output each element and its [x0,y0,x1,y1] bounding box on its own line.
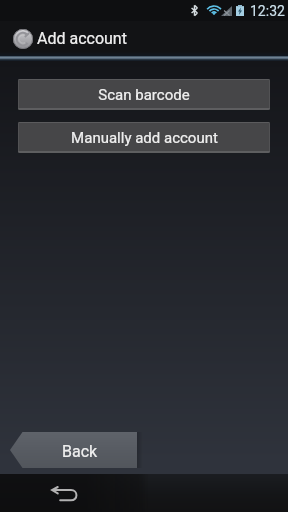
staticText: Manually add account [71,129,218,147]
button[interactable]: Back [46,475,82,511]
staticText: Add account [37,29,127,48]
button[interactable]: Manually add account [18,122,270,153]
button[interactable]: Add account [0,21,140,56]
staticText: Back [62,442,98,461]
button[interactable]: Back [10,432,137,468]
button[interactable]: Scan barcode [18,79,270,110]
staticText: 12:32 [250,3,285,19]
staticText: Scan barcode [98,86,190,104]
